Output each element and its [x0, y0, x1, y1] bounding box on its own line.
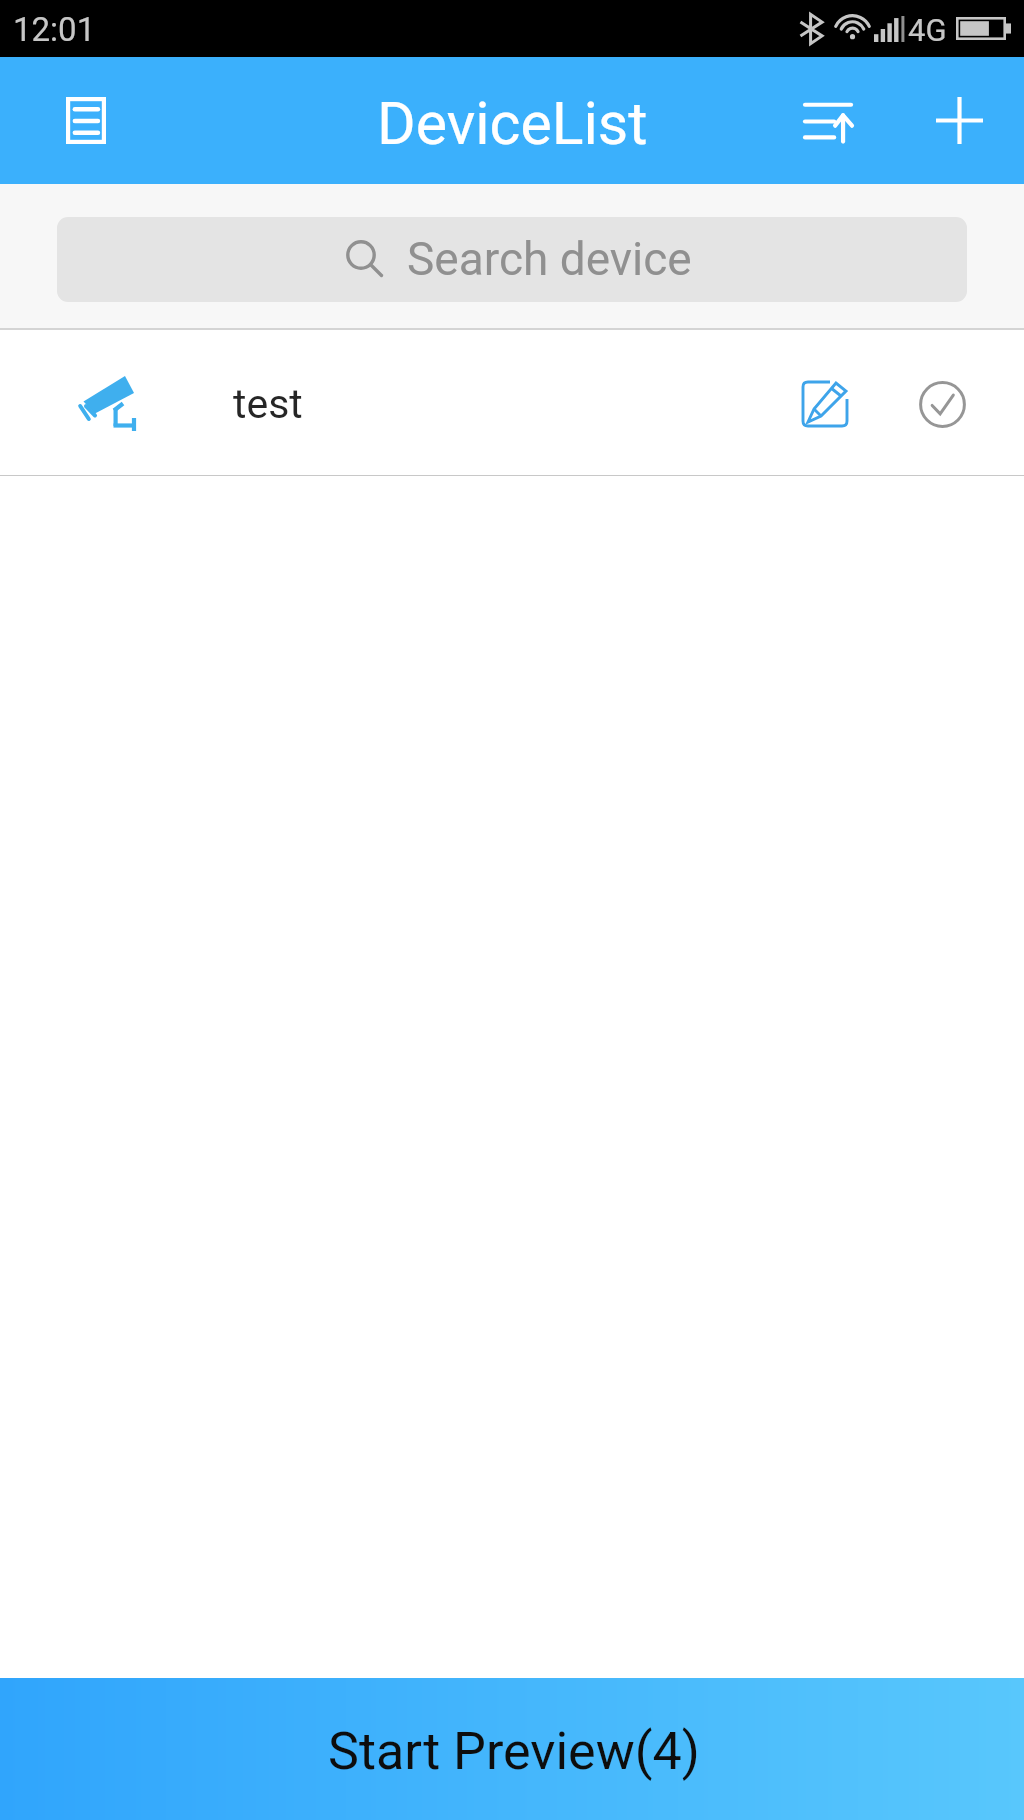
button[interactable]: Menu	[42, 76, 130, 164]
button[interactable]: Search device	[57, 217, 967, 302]
button[interactable]: Start Preview(4)	[0, 1678, 1024, 1820]
staticText: 12:01	[13, 10, 96, 49]
staticText: 4G	[908, 12, 947, 48]
button[interactable]: Sort	[781, 75, 876, 170]
staticText: test	[233, 380, 303, 428]
button[interactable]: Select device	[892, 354, 992, 454]
button[interactable]: Add device	[915, 76, 1003, 164]
button[interactable]: test	[0, 330, 1024, 475]
staticText: Start Preview(4)	[328, 1721, 700, 1782]
staticText: Search device	[407, 232, 692, 286]
button[interactable]: Edit device	[776, 355, 876, 455]
staticText: DeviceList	[377, 89, 648, 158]
